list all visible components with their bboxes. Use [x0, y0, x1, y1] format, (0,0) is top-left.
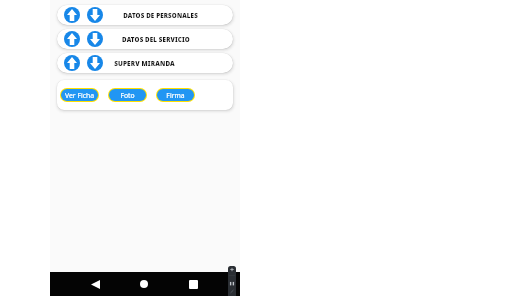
staticText: DATOS DEL SERVICIO: [122, 35, 190, 43]
button[interactable]: Back: [87, 276, 103, 292]
button[interactable]: Firma: [157, 89, 194, 101]
staticText: Foto: [120, 91, 135, 100]
button[interactable]: Move up: [57, 5, 233, 25]
button[interactable]: Home: [136, 276, 152, 292]
staticText: Firma: [166, 91, 185, 100]
button[interactable]: Move up: [64, 7, 80, 23]
button[interactable]: Move down: [87, 31, 103, 47]
button[interactable]: Ver Ficha: [61, 89, 98, 101]
button[interactable]: Move up: [64, 55, 80, 71]
staticText: SUPERV MIRANDA: [114, 59, 175, 68]
button[interactable]: Recents: [185, 276, 201, 292]
button[interactable]: Foto: [109, 89, 146, 101]
button[interactable]: Move down: [87, 7, 103, 23]
button[interactable]: Move up: [57, 53, 233, 73]
button[interactable]: Emulator toolbar: [228, 266, 236, 296]
staticText: Ver Ficha: [65, 91, 94, 100]
button[interactable]: Move up: [64, 31, 80, 47]
button[interactable]: Move down: [87, 55, 103, 71]
button[interactable]: Move up: [57, 29, 233, 49]
staticText: DATOS DE PERSONALES: [123, 11, 198, 19]
